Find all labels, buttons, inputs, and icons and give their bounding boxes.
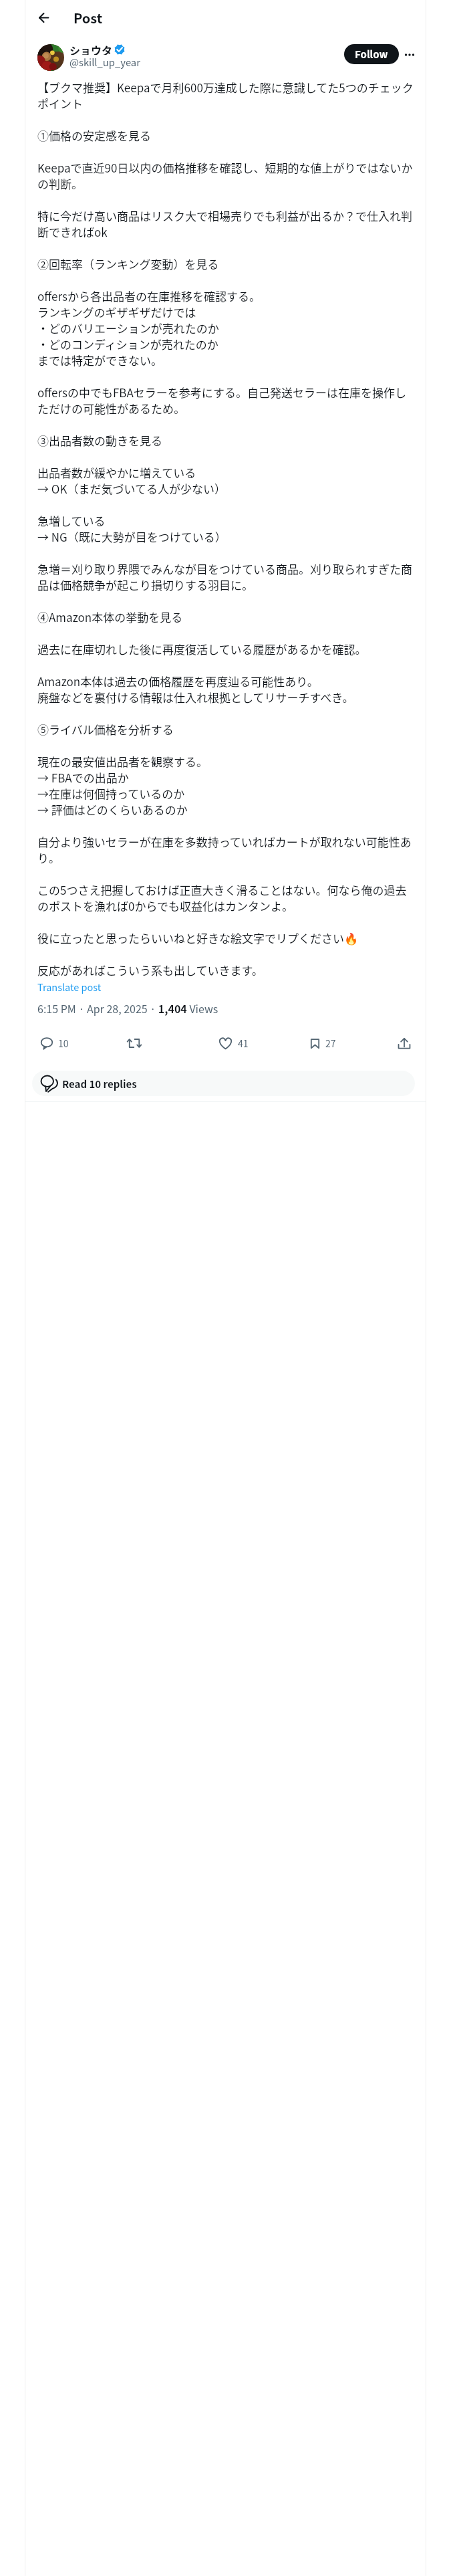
staticText: @skill_up_year <box>69 55 140 69</box>
button[interactable]: Bookmark <box>309 1032 337 1055</box>
staticText: 【ブクマ推奨】Keepaで月利600万達成した際に意識してた5つのチェックポイン… <box>37 80 414 978</box>
staticText: Follow <box>355 47 388 62</box>
staticText: 6:15 PM · Apr 28, 2025 · 1,404 Views <box>37 1000 218 1016</box>
staticText: 27 <box>325 1037 336 1050</box>
staticText: 10 <box>58 1037 69 1050</box>
staticText: 41 <box>238 1037 249 1050</box>
button[interactable]: Translate post <box>37 980 102 994</box>
button[interactable]: Reply <box>40 1032 69 1055</box>
button[interactable]: Back <box>29 3 58 32</box>
staticText: Post <box>73 8 103 27</box>
button[interactable]: Share <box>393 1032 416 1055</box>
button[interactable]: More options <box>399 44 420 66</box>
button[interactable]: Follow <box>344 44 399 64</box>
button[interactable]: Profile photo <box>37 44 64 71</box>
button[interactable]: Like <box>218 1032 249 1055</box>
button[interactable]: Read 10 replies <box>32 1071 415 1096</box>
button[interactable]: Repost <box>126 1032 142 1055</box>
staticText: Read 10 replies <box>62 1077 137 1091</box>
staticText: ショウタ <box>69 42 113 55</box>
